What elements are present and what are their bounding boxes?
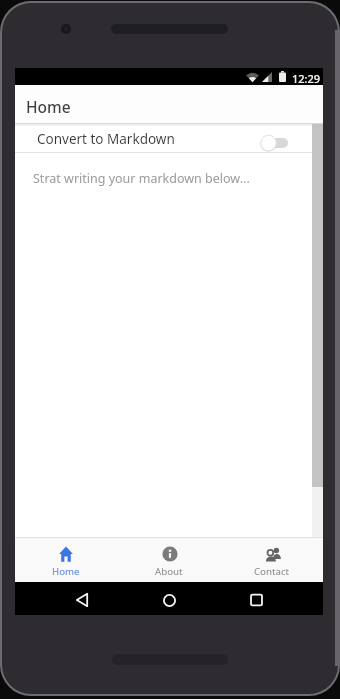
button[interactable]: Convert to Markdown [15, 126, 323, 152]
staticText: Convert to Markdown [37, 130, 175, 148]
button[interactable] [76, 593, 88, 607]
button[interactable] [260, 133, 290, 153]
button[interactable] [250, 594, 263, 606]
staticText: 12:29 [292, 71, 321, 86]
staticText: Home [52, 565, 80, 578]
staticText: Home [26, 96, 71, 117]
button[interactable] [163, 594, 176, 607]
staticText: Strat writing your markdown below... [33, 170, 250, 187]
button[interactable]: Home [15, 537, 117, 582]
button[interactable]: Contact [220, 537, 323, 582]
staticText: Contact [254, 565, 290, 578]
button[interactable]: About [117, 537, 220, 582]
staticText: About [155, 565, 183, 578]
